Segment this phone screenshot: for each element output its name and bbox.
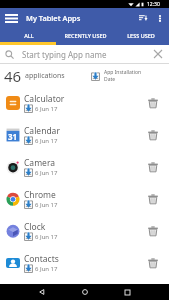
button[interactable]: Delete — [144, 126, 162, 144]
staticText: Date — [104, 76, 116, 83]
button[interactable]: RECENTLY USED — [57, 28, 113, 42]
button[interactable]: Sort — [134, 8, 152, 28]
button[interactable]: Home — [77, 284, 93, 300]
button[interactable]: Calculator — [0, 87, 169, 119]
button[interactable]: Delete — [144, 158, 162, 176]
staticText: 6 Jun 17 — [35, 169, 58, 177]
staticText: 6 Jun 17 — [35, 137, 58, 145]
button[interactable]: Recents — [119, 284, 135, 300]
staticText: App Installation — [104, 69, 142, 76]
button[interactable]: Contacts — [0, 247, 169, 279]
button[interactable]: ALL — [0, 28, 57, 42]
staticText: Contacts — [24, 253, 59, 265]
button[interactable]: More options — [152, 8, 168, 28]
button[interactable]: Clear — [151, 47, 165, 61]
button[interactable]: 31 — [0, 119, 169, 151]
button[interactable]: Back — [34, 284, 50, 300]
staticText: Chrome — [24, 189, 56, 201]
button[interactable]: LESS USED — [113, 28, 169, 42]
staticText: Start typing App name — [22, 49, 107, 60]
button[interactable]: Chrome — [0, 183, 169, 215]
button[interactable]: Delete — [144, 222, 162, 240]
button[interactable]: Delete — [144, 254, 162, 272]
staticText: 31 — [8, 131, 18, 142]
staticText: My Tablet Apps — [26, 13, 81, 23]
staticText: Calculator — [24, 93, 65, 105]
button[interactable]: Camera — [0, 151, 169, 183]
staticText: 12:30 — [147, 1, 160, 8]
staticText: Camera — [24, 157, 55, 169]
button[interactable]: Clock — [0, 215, 169, 247]
staticText: 6 Jun 17 — [35, 105, 58, 113]
button[interactable]: Menu — [0, 8, 23, 28]
staticText: RECENTLY USED — [64, 32, 107, 39]
staticText: 6 Jun 17 — [35, 233, 58, 241]
staticText: LESS USED — [127, 32, 155, 39]
staticText: Clock — [24, 221, 46, 233]
staticText: 6 Jun 17 — [35, 201, 58, 209]
staticText: applications — [25, 71, 65, 81]
staticText: 46 — [4, 66, 22, 86]
button[interactable]: Delete — [144, 190, 162, 208]
button[interactable]: Delete — [144, 94, 162, 112]
staticText: Calendar — [24, 125, 60, 137]
button[interactable]: App Installation — [91, 69, 142, 83]
staticText: 6 Jun 17 — [35, 265, 58, 273]
staticText: ALL — [24, 32, 34, 39]
